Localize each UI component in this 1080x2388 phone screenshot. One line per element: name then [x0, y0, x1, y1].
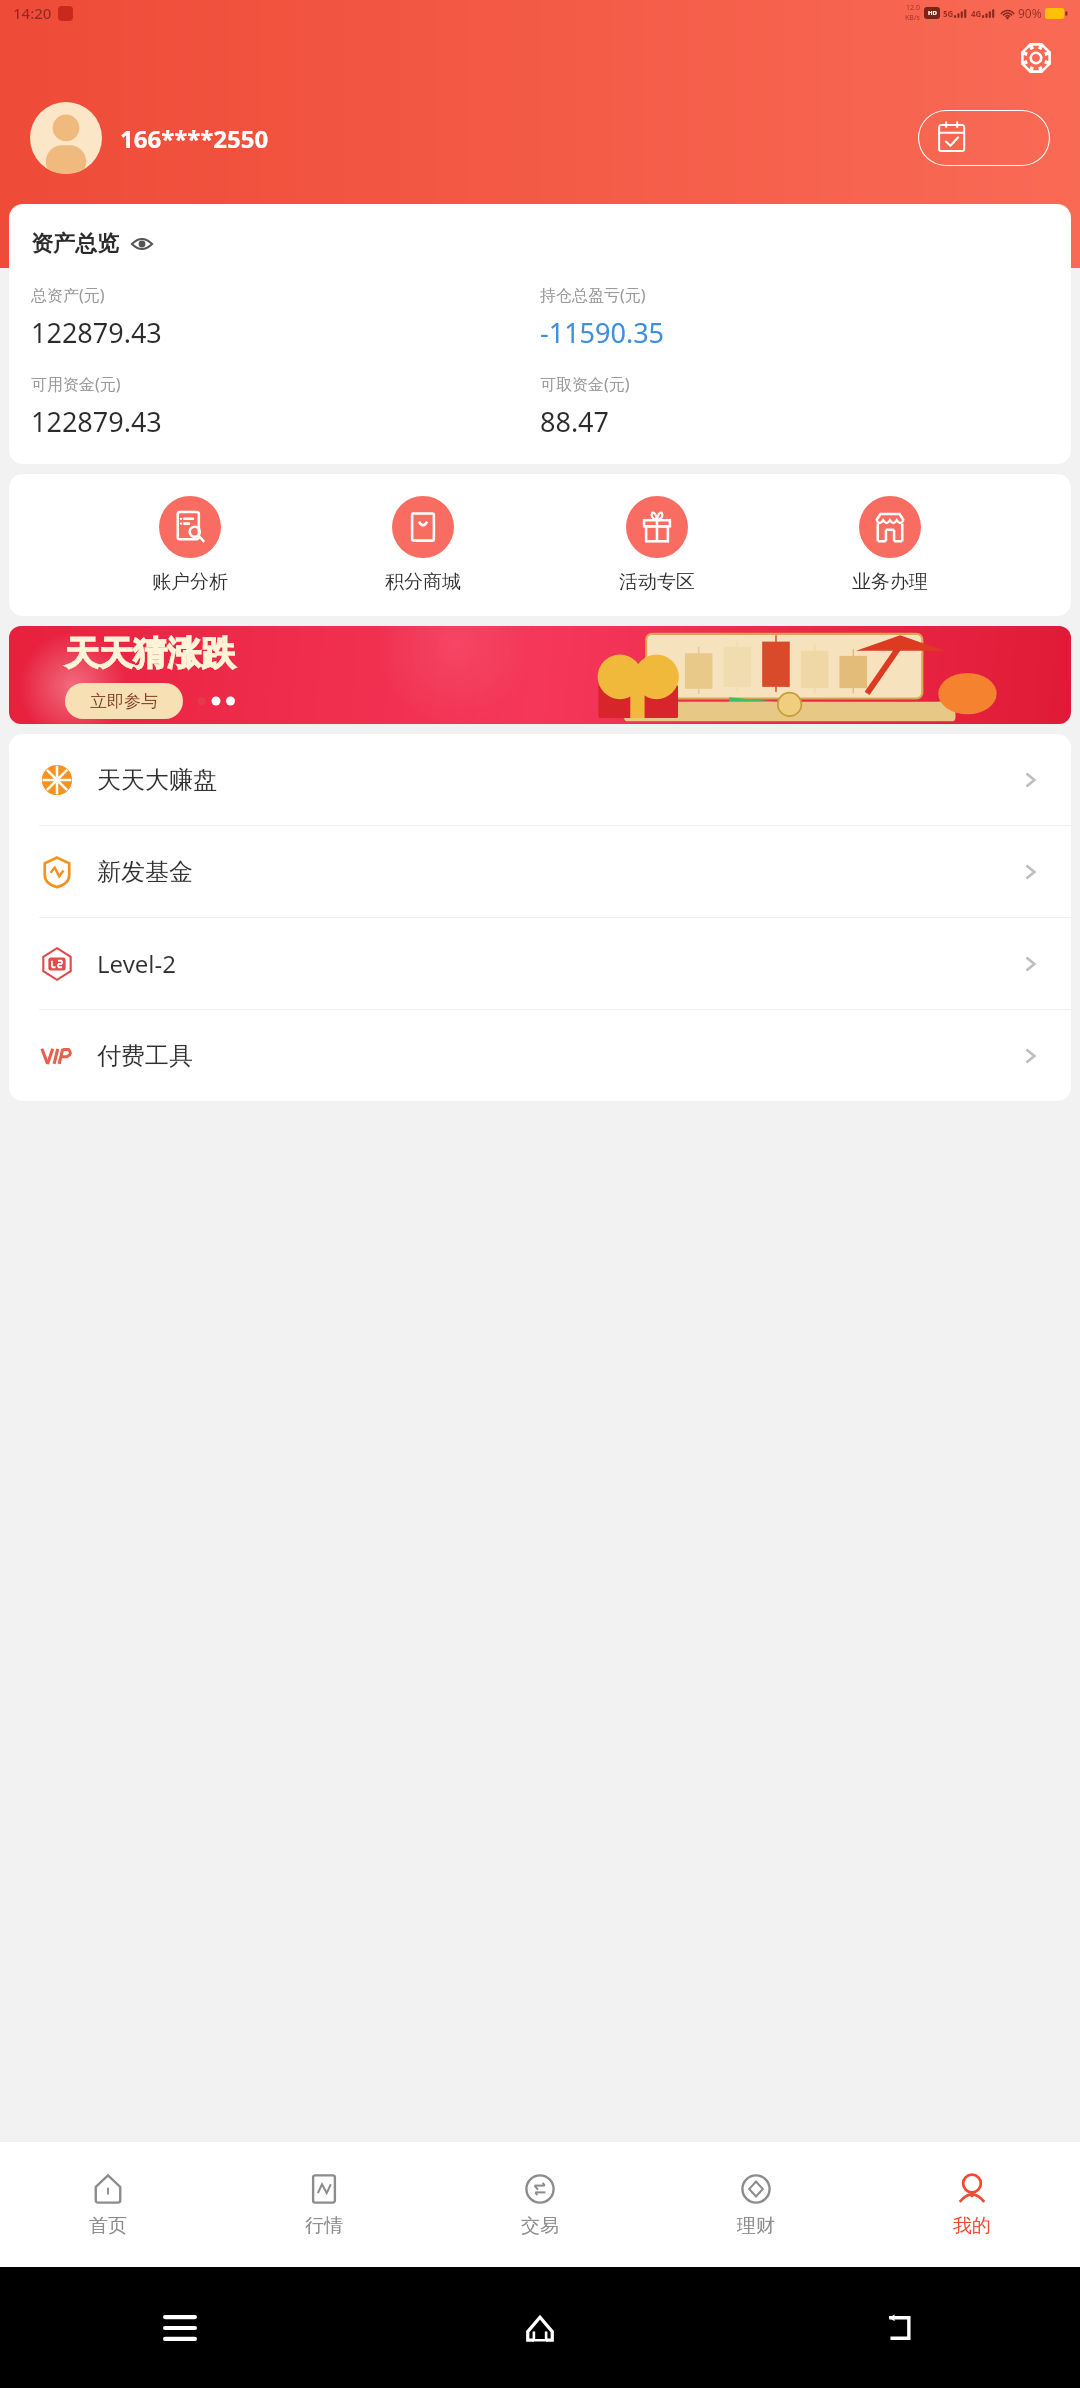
staticText: 122879.43	[31, 403, 162, 440]
button[interactable]: 立即参与	[65, 683, 183, 719]
staticText: 90%	[1018, 5, 1042, 21]
button[interactable]: 签到	[918, 110, 1050, 166]
button[interactable]: Back	[720, 2267, 1080, 2388]
button[interactable]: 账户分析	[138, 494, 242, 596]
staticText: 12.0	[906, 3, 920, 13]
staticText: 88.47	[540, 403, 610, 440]
staticText: 122879.43	[31, 314, 162, 351]
button[interactable]: Home	[360, 2267, 720, 2388]
button[interactable]: Settings	[1014, 36, 1058, 80]
button[interactable]: 理财	[648, 2142, 864, 2267]
staticText: 账户分析	[152, 570, 228, 594]
button[interactable]: 交易	[432, 2142, 648, 2267]
staticText: HD	[928, 9, 937, 17]
staticText: 持仓总盈亏(元)	[540, 284, 646, 306]
button[interactable]: 业务办理	[838, 494, 942, 596]
button[interactable]: 行情	[216, 2142, 432, 2267]
staticText: -11590.35	[540, 314, 665, 351]
button[interactable]: 首页	[0, 2142, 216, 2267]
button[interactable]: Recent apps	[0, 2267, 360, 2388]
staticText: 理财	[737, 2214, 775, 2238]
staticText: 立即参与	[90, 691, 158, 712]
staticText: Level-2	[97, 947, 177, 980]
button[interactable]: Avatar	[30, 102, 102, 174]
staticText: 付费工具	[97, 1041, 193, 1071]
staticText: 活动专区	[619, 570, 695, 594]
staticText: 可用资金(元)	[31, 373, 121, 395]
button[interactable]: 活动专区	[605, 494, 709, 596]
staticText: 业务办理	[852, 570, 928, 594]
staticText: 天天猜涨跌	[65, 632, 235, 675]
staticText: 行情	[305, 2214, 343, 2238]
button[interactable]: 积分商城	[371, 494, 475, 596]
staticText: 我的	[953, 2214, 991, 2238]
button[interactable]: 天天猜涨跌 立即参与	[9, 626, 1071, 724]
staticText: 积分商城	[385, 570, 461, 594]
staticText: 天天大赚盘	[97, 765, 217, 795]
staticText: 资产总览	[31, 230, 119, 258]
staticText: 首页	[89, 2214, 127, 2238]
staticText: 4G	[971, 8, 982, 19]
button[interactable]: 我的	[864, 2142, 1080, 2267]
button[interactable]: Level-2	[9, 918, 1071, 1009]
staticText: 总资产(元)	[31, 284, 105, 306]
button[interactable]: 天天大赚盘	[9, 734, 1071, 825]
staticText: 交易	[521, 2214, 559, 2238]
staticText: 可取资金(元)	[540, 373, 630, 395]
staticText: KB/s	[905, 13, 920, 23]
staticText: 166****2550	[120, 122, 269, 155]
staticText: 14:20	[13, 3, 52, 23]
staticText: 5G	[943, 8, 954, 19]
staticText: 新发基金	[97, 857, 193, 887]
button[interactable]: 资产总览	[9, 204, 1071, 464]
button[interactable]: 新发基金	[9, 826, 1071, 917]
button[interactable]: 付费工具	[9, 1010, 1071, 1101]
